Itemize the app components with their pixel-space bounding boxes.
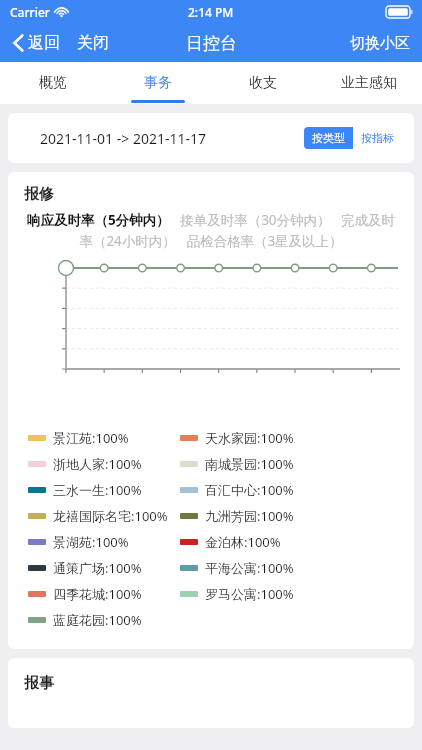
button[interactable]: 概览	[0, 62, 105, 104]
staticText: 天水家园:100%	[205, 429, 294, 447]
button[interactable]: 平海公寓:100%	[180, 559, 294, 577]
staticText: 2021-11-01 -> 2021-11-17	[40, 129, 206, 148]
button[interactable]: 天水家园:100%	[180, 429, 294, 447]
staticText: 按类型	[312, 131, 345, 145]
button[interactable]: 报事	[8, 658, 414, 728]
button[interactable]: 南城景园:100%	[180, 455, 294, 473]
staticText: 四季花城:100%	[53, 585, 142, 603]
button[interactable]: 罗马公寓:100%	[180, 585, 294, 603]
staticText: 报修	[24, 185, 54, 204]
staticText: 平海公寓:100%	[205, 559, 294, 577]
button[interactable]: 景江苑:100%	[28, 429, 129, 447]
staticText: 事务	[144, 74, 172, 92]
button[interactable]: 百汇中心:100%	[180, 481, 294, 499]
button[interactable]: 事务	[105, 62, 210, 104]
button[interactable]: 蓝庭花园:100%	[28, 611, 142, 629]
button[interactable]: 金泊林:100%	[180, 533, 281, 551]
staticText: 收支	[249, 74, 277, 92]
button[interactable]: 按类型	[304, 127, 353, 149]
staticText: 浙地人家:100%	[53, 455, 142, 473]
staticText: 三水一生:100%	[53, 481, 142, 499]
staticText: 罗马公寓:100%	[205, 585, 294, 603]
button[interactable]: 返回	[10, 28, 63, 58]
staticText: Carrier	[10, 4, 50, 20]
staticText: 2:14 PM	[188, 4, 234, 20]
staticText: 业主感知	[341, 74, 397, 92]
staticText: 响应及时率（5分钟内） 接单及时率（30分钟内） 完成及时率（24小时内） 品检…	[22, 211, 400, 250]
staticText: 九洲芳园:100%	[205, 507, 294, 525]
staticText: 金泊林:100%	[205, 533, 281, 551]
staticText: 景江苑:100%	[53, 429, 129, 447]
staticText: 报事	[24, 674, 54, 693]
staticText: 日控台	[186, 33, 237, 54]
button[interactable]: 龙禧国际名宅:100%	[28, 507, 168, 525]
button[interactable]: 三水一生:100%	[28, 481, 142, 499]
staticText: 按指标	[361, 131, 394, 145]
staticText: 蓝庭花园:100%	[53, 611, 142, 629]
button[interactable]: 景湖苑:100%	[28, 533, 129, 551]
staticText: 通策广场:100%	[53, 559, 142, 577]
button[interactable]: 关闭	[73, 29, 113, 57]
button[interactable]: 四季花城:100%	[28, 585, 142, 603]
button[interactable]: 业主感知	[316, 62, 422, 104]
staticText: 概览	[39, 74, 67, 92]
button[interactable]: 九洲芳园:100%	[180, 507, 294, 525]
staticText: 景湖苑:100%	[53, 533, 129, 551]
button[interactable]: 通策广场:100%	[28, 559, 142, 577]
staticText: 返回	[28, 33, 60, 53]
button[interactable]: 浙地人家:100%	[28, 455, 142, 473]
staticText: 百汇中心:100%	[205, 481, 294, 499]
staticText: 南城景园:100%	[205, 455, 294, 473]
button[interactable]: 收支	[210, 62, 316, 104]
staticText: 龙禧国际名宅:100%	[53, 507, 168, 525]
button[interactable]: 按指标	[353, 127, 402, 149]
button[interactable]: 切换小区	[346, 30, 414, 57]
